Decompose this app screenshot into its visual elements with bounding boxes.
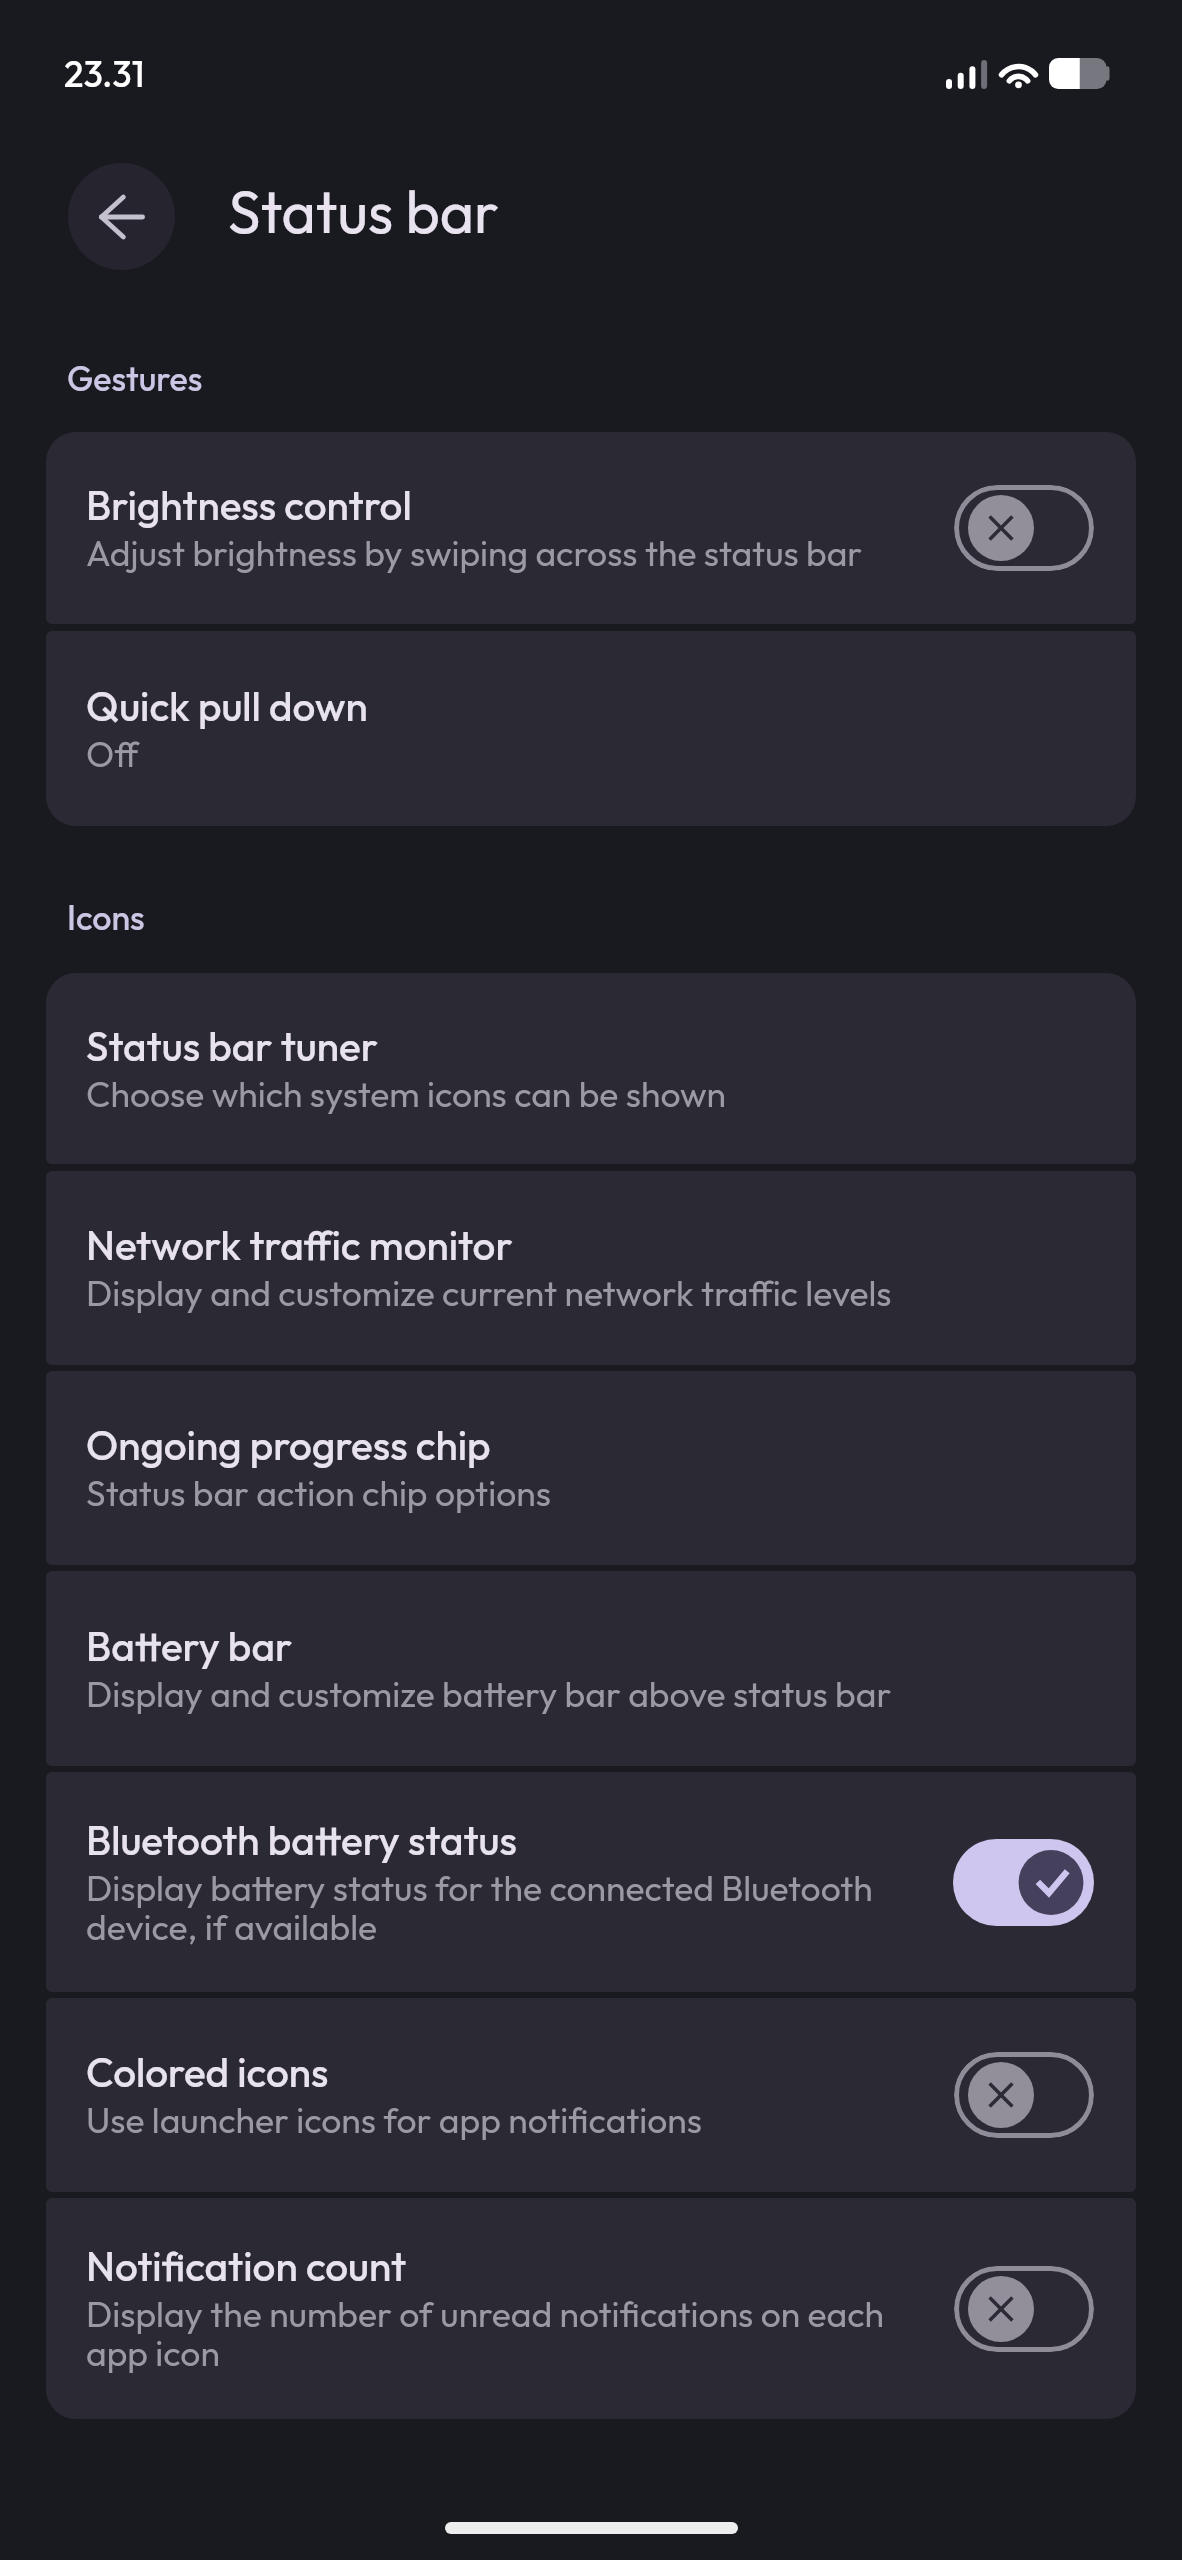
- button[interactable]: Bluetooth battery status: [46, 1772, 1136, 1992]
- button[interactable]: Toggle, off: [954, 485, 1094, 571]
- staticText: Bluetooth battery status: [86, 1814, 517, 1865]
- staticText: Ongoing progress chip: [86, 1419, 491, 1470]
- button[interactable]: Brightness control: [46, 432, 1136, 624]
- button[interactable]: Toggle, off: [954, 2052, 1094, 2138]
- button[interactable]: Navigate up: [68, 163, 175, 270]
- staticText: Use launcher icons for app notifications: [86, 2097, 702, 2142]
- staticText: Display and customize current network tr…: [86, 1270, 892, 1315]
- staticText: Display battery status for the connected…: [86, 1865, 937, 1949]
- staticText: Colored icons: [86, 2046, 329, 2097]
- staticText: Network traffic monitor: [86, 1219, 513, 1270]
- button[interactable]: Quick pull down: [46, 631, 1136, 826]
- staticText: Icons: [67, 896, 145, 939]
- staticText: Display the number of unread notificatio…: [86, 2291, 938, 2375]
- staticText: Choose which system icons can be shown: [86, 1071, 727, 1116]
- staticText: Off: [86, 731, 139, 776]
- button[interactable]: Ongoing progress chip: [46, 1371, 1136, 1565]
- button[interactable]: Status bar tuner: [46, 973, 1136, 1164]
- staticText: Adjust brightness by swiping across the …: [86, 530, 863, 575]
- staticText: Gestures: [67, 357, 203, 400]
- staticText: Status bar action chip options: [86, 1470, 551, 1515]
- button[interactable]: Network traffic monitor: [46, 1171, 1136, 1365]
- button[interactable]: Toggle, off: [954, 2266, 1094, 2352]
- button[interactable]: Toggle, on: [953, 1839, 1094, 1926]
- staticText: 23.31: [64, 51, 145, 96]
- button[interactable]: Battery bar: [46, 1571, 1136, 1766]
- staticText: Status bar tuner: [86, 1020, 378, 1071]
- staticText: Notification count: [86, 2240, 407, 2291]
- staticText: Battery bar: [86, 1620, 293, 1671]
- staticText: Quick pull down: [86, 680, 368, 731]
- staticText: Status bar: [228, 174, 499, 248]
- button[interactable]: Colored icons: [46, 1998, 1136, 2192]
- button[interactable]: Notification count: [46, 2198, 1136, 2419]
- staticText: Brightness control: [86, 479, 412, 530]
- staticText: Display and customize battery bar above …: [86, 1671, 892, 1716]
